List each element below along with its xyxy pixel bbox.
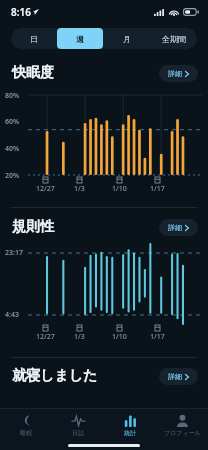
staticText: 1/3	[74, 332, 85, 342]
staticText: 8:16	[11, 5, 31, 19]
staticText: 全期間	[162, 34, 186, 44]
staticText: 23:17	[5, 248, 23, 258]
staticText: 1/10	[112, 184, 127, 194]
button[interactable]: プロフィール	[156, 409, 208, 441]
staticText: 週	[76, 34, 84, 44]
button[interactable]: 詳細	[159, 65, 198, 82]
staticText: 12/27	[36, 332, 55, 342]
button[interactable]: 週	[57, 28, 103, 49]
staticText: 統計	[124, 429, 136, 437]
staticText: プロフィール	[164, 429, 201, 437]
staticText: 1/17	[150, 332, 165, 342]
staticText: 1/17	[150, 184, 165, 194]
staticText: 睡眠	[20, 429, 32, 437]
button[interactable]: 睡眠	[0, 409, 52, 441]
staticText: 月	[123, 34, 131, 44]
staticText: 40%	[5, 144, 20, 154]
button[interactable]: 詳細	[159, 368, 198, 385]
staticText: 詳細	[168, 69, 182, 78]
staticText: 20%	[5, 171, 20, 181]
button[interactable]: 全期間	[150, 28, 197, 49]
staticText: 4:43	[5, 310, 19, 320]
button[interactable]: 日	[11, 28, 57, 49]
staticText: 1/10	[112, 332, 127, 342]
staticText: 快眠度	[12, 64, 54, 82]
staticText: 日誌	[72, 429, 84, 437]
staticText: 1/3	[74, 184, 85, 194]
staticText: 規則性	[12, 218, 54, 236]
button[interactable]: 詳細	[159, 219, 198, 236]
staticText: 就寝しました	[12, 367, 98, 385]
staticText: 60%	[5, 117, 20, 127]
button[interactable]: 統計	[104, 409, 156, 441]
staticText: 詳細	[168, 372, 182, 381]
button[interactable]: 日誌	[52, 409, 104, 441]
button[interactable]: 月	[103, 28, 150, 49]
staticText: 日	[30, 34, 38, 44]
staticText: 80%	[5, 91, 20, 101]
staticText: 詳細	[168, 223, 182, 232]
staticText: 12/27	[36, 184, 55, 194]
